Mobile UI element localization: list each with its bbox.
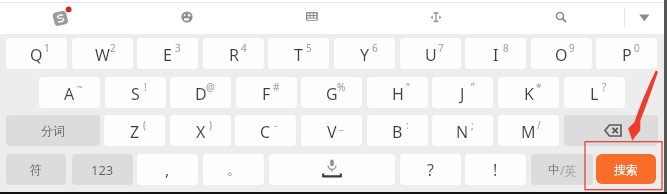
button[interactable]: F — [236, 77, 297, 108]
button[interactable]: K — [498, 77, 559, 108]
staticText: / — [537, 118, 541, 132]
staticText: I — [493, 44, 499, 66]
staticText: 6 — [372, 41, 378, 55]
button[interactable]: 分词 — [6, 115, 100, 146]
button[interactable]: I — [465, 38, 526, 69]
staticText: A — [64, 83, 75, 105]
button[interactable]: Backspace — [564, 115, 658, 146]
staticText: % — [337, 80, 346, 94]
button[interactable]: , — [137, 154, 198, 185]
staticText: K — [524, 83, 534, 105]
staticText: 4 — [241, 41, 247, 55]
button[interactable]: Z — [104, 115, 165, 146]
staticText: O — [555, 44, 568, 66]
button[interactable]: L — [564, 77, 625, 108]
staticText: 123 — [91, 161, 114, 179]
staticText: 0 — [634, 41, 640, 55]
button[interactable]: X — [170, 115, 231, 146]
staticText: Z — [130, 121, 140, 143]
staticText: W — [95, 44, 110, 66]
button[interactable]: Switch keyboard layout — [301, 7, 323, 27]
staticText: ( — [143, 118, 146, 132]
staticText: , — [165, 159, 170, 181]
button[interactable]: 。 — [203, 154, 264, 185]
staticText: ; — [471, 118, 474, 132]
staticText: ? — [427, 159, 434, 181]
button[interactable]: Voice input and space — [269, 154, 395, 185]
staticText: 中 — [548, 162, 560, 177]
button[interactable]: E — [137, 38, 198, 69]
button[interactable]: ! — [465, 154, 526, 185]
staticText: P — [622, 44, 632, 66]
staticText: J — [460, 83, 465, 105]
staticText: 2 — [110, 41, 116, 55]
staticText: ! — [493, 159, 498, 181]
staticText: S — [131, 83, 140, 105]
staticText: _ — [339, 118, 344, 132]
staticText: ” — [471, 80, 475, 94]
staticText: T — [294, 44, 303, 66]
staticText: 。 — [227, 161, 241, 179]
button[interactable]: Y — [334, 38, 395, 69]
button[interactable]: O — [531, 38, 592, 69]
button[interactable]: Move cursor — [426, 7, 446, 27]
button[interactable]: U — [400, 38, 461, 69]
button[interactable]: C — [235, 115, 296, 146]
button[interactable]: S — [105, 77, 166, 108]
staticText: 3 — [175, 41, 181, 55]
staticText: - — [274, 118, 278, 132]
button[interactable]: J — [432, 77, 493, 108]
staticText: M — [521, 121, 536, 143]
staticText: ! — [144, 80, 147, 94]
staticText: : — [406, 118, 409, 132]
button[interactable]: W — [72, 38, 133, 69]
staticText: C — [260, 121, 271, 143]
staticText: 8 — [503, 41, 509, 55]
button[interactable]: 中 — [531, 154, 593, 185]
button[interactable]: Q — [6, 38, 67, 69]
button[interactable]: R — [203, 38, 264, 69]
staticText: 符 — [30, 162, 42, 177]
staticText: E — [163, 44, 172, 66]
staticText: D — [195, 83, 207, 105]
staticText: ? — [602, 80, 607, 94]
button[interactable]: Emoji — [177, 7, 197, 27]
staticText: 搜索 — [614, 162, 638, 177]
button[interactable]: 符 — [6, 154, 66, 185]
staticText: R — [229, 44, 239, 66]
button[interactable]: B — [367, 115, 428, 146]
staticText: X — [196, 121, 206, 143]
staticText: 9 — [569, 41, 575, 55]
staticText: Q — [30, 44, 43, 66]
button[interactable]: 搜索 — [596, 154, 656, 184]
button[interactable]: M — [498, 115, 559, 146]
button[interactable]: Search — [550, 6, 570, 26]
staticText: Y — [360, 44, 370, 66]
button[interactable]: T — [268, 38, 329, 69]
button[interactable]: H — [367, 77, 428, 108]
staticText: * — [536, 80, 542, 94]
button[interactable]: N — [432, 115, 493, 146]
staticText: “ — [406, 80, 410, 94]
staticText: ~ — [77, 80, 83, 94]
staticText: 1 — [44, 41, 50, 55]
staticText: 7 — [438, 41, 444, 55]
button[interactable]: G — [301, 77, 362, 108]
staticText: B — [392, 121, 403, 143]
staticText: 分词 — [41, 123, 65, 138]
staticText: 5 — [306, 41, 312, 55]
staticText: U — [425, 44, 437, 66]
staticText: ) — [209, 118, 212, 132]
staticText: N — [456, 121, 469, 143]
button[interactable]: ? — [400, 154, 461, 185]
staticText: # — [273, 80, 280, 94]
staticText: V — [327, 121, 337, 143]
staticText: G — [326, 83, 338, 105]
button[interactable]: V — [301, 115, 362, 146]
button[interactable]: D — [170, 77, 231, 108]
button[interactable]: Hide keyboard — [634, 7, 655, 27]
button[interactable]: A — [39, 77, 100, 108]
button[interactable]: P — [596, 38, 657, 69]
button[interactable]: 123 — [72, 154, 133, 185]
button[interactable]: Sogou input settings — [50, 6, 72, 28]
